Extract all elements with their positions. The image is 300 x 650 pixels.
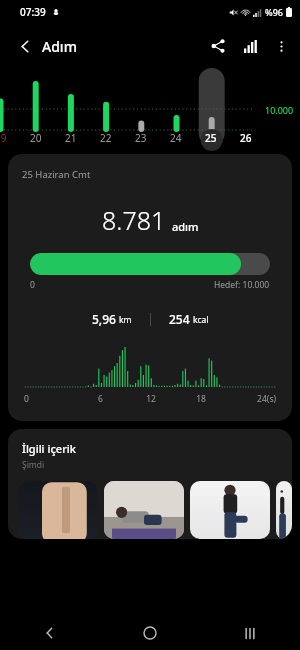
button[interactable]: Home xyxy=(100,616,200,650)
staticText: 0 xyxy=(24,393,75,405)
staticText: %96 xyxy=(265,6,283,18)
staticText: km xyxy=(119,314,132,326)
staticText: 24 xyxy=(170,131,182,145)
staticText: Şimdi xyxy=(22,459,45,471)
staticText: 12 xyxy=(126,393,176,405)
staticText: Adım xyxy=(42,37,77,56)
staticText: 22 xyxy=(100,131,112,145)
button[interactable]: Related content item xyxy=(18,481,98,539)
button[interactable]: Related content item xyxy=(104,481,184,539)
button[interactable]: 25 xyxy=(193,131,228,145)
staticText: 5,96 xyxy=(92,311,116,327)
staticText: İlgili içerik xyxy=(22,441,76,456)
button[interactable]: 19 xyxy=(0,131,18,145)
staticText: 20 xyxy=(30,131,42,145)
staticText: 10.000 xyxy=(265,104,294,116)
button[interactable]: Related content item xyxy=(276,481,292,539)
button[interactable]: 21 xyxy=(53,131,88,145)
staticText: 24(s) xyxy=(226,393,276,405)
staticText: 19 xyxy=(0,131,7,145)
staticText: 8.781 xyxy=(102,203,166,237)
button[interactable]: Back xyxy=(0,616,100,650)
staticText: 26 xyxy=(240,131,252,145)
staticText: Hedef: 10.000 xyxy=(214,279,270,291)
staticText: adım xyxy=(172,219,199,234)
button[interactable]: Related content item xyxy=(190,481,270,539)
button[interactable]: 20 xyxy=(18,131,53,145)
staticText: 25 xyxy=(205,131,217,145)
staticText: 25 Haziran Cmt xyxy=(22,168,91,181)
button[interactable]: Recent apps xyxy=(200,616,300,650)
staticText: kcal xyxy=(193,314,209,326)
button[interactable]: 25 Haziran Cmt xyxy=(8,154,292,421)
staticText: 23 xyxy=(135,131,147,145)
button[interactable]: 26 xyxy=(228,131,263,145)
button[interactable]: Share xyxy=(202,30,234,62)
button[interactable]: Statistics xyxy=(234,30,266,62)
staticText: 21 xyxy=(65,131,77,145)
button[interactable]: 22 xyxy=(88,131,123,145)
staticText: 07:39 xyxy=(20,5,46,19)
staticText: 6 xyxy=(75,393,126,405)
button[interactable]: 23 xyxy=(123,131,158,145)
button[interactable]: 24 xyxy=(158,131,193,145)
staticText: 0 xyxy=(30,279,35,291)
staticText: 18 xyxy=(176,393,226,405)
staticText: 254 xyxy=(169,311,190,327)
button[interactable]: Back xyxy=(8,29,42,63)
button[interactable]: More options xyxy=(266,31,296,61)
